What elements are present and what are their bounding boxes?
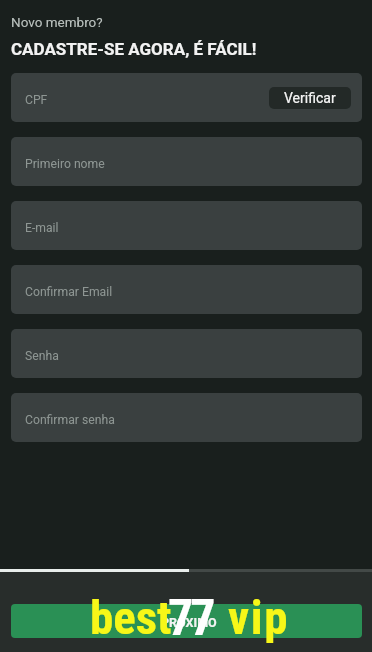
button[interactable]: E-mail bbox=[11, 201, 362, 250]
button[interactable]: Primeiro nome bbox=[11, 137, 362, 186]
staticText: E-mail bbox=[25, 221, 59, 235]
staticText: Primeiro nome bbox=[25, 157, 105, 171]
button[interactable]: CPF bbox=[11, 73, 362, 122]
button[interactable]: PRÓXIMO bbox=[11, 604, 362, 638]
staticText: best bbox=[90, 590, 172, 645]
staticText: Novo membro? bbox=[11, 14, 103, 30]
staticText: vip bbox=[228, 590, 290, 645]
staticText: CPF bbox=[25, 93, 48, 107]
staticText: Verificar bbox=[284, 90, 336, 106]
button[interactable]: Senha bbox=[11, 329, 362, 378]
staticText: Confirmar Email bbox=[25, 285, 113, 299]
staticText: PRÓXIMO bbox=[161, 615, 217, 630]
button[interactable]: Confirmar senha bbox=[11, 393, 362, 442]
button[interactable]: Confirmar Email bbox=[11, 265, 362, 314]
button[interactable]: Verificar bbox=[269, 87, 351, 109]
staticText: Confirmar senha bbox=[25, 413, 115, 427]
staticText: Senha bbox=[25, 349, 59, 363]
staticText: 77 bbox=[168, 589, 213, 648]
staticText: CADASTRE-SE AGORA, É FÁCIL! bbox=[11, 39, 257, 59]
